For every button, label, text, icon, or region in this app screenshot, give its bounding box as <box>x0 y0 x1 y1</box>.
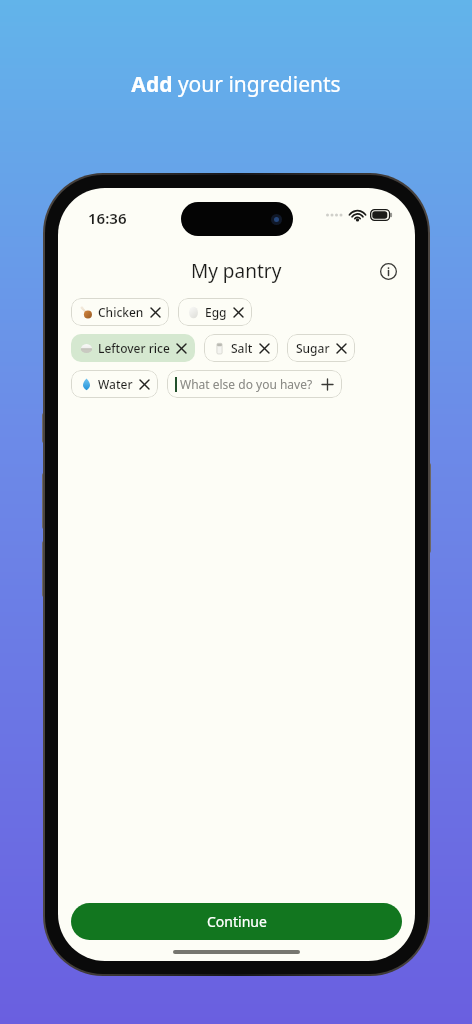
button[interactable]: Egg <box>178 298 252 326</box>
button[interactable]: Leftover rice <box>71 334 195 362</box>
staticText: Sugar <box>296 340 330 356</box>
staticText: My pantry <box>191 258 282 284</box>
staticText: Egg <box>205 304 227 320</box>
staticText: 16:36 <box>88 208 127 228</box>
button[interactable]: Chicken <box>71 298 169 326</box>
button[interactable]: Salt <box>204 334 278 362</box>
staticText: Salt <box>231 340 253 356</box>
button[interactable]: Water <box>71 370 158 398</box>
button[interactable]: Continue <box>71 903 402 940</box>
staticText: Continue <box>207 912 267 931</box>
button[interactable]: Sugar <box>287 334 355 362</box>
staticText: Add your ingredients <box>131 70 341 99</box>
staticText: Leftover rice <box>98 340 170 356</box>
button[interactable]: What else do you have? <box>167 370 342 398</box>
staticText: What else do you have? <box>180 376 313 392</box>
staticText: Chicken <box>98 304 144 320</box>
staticText: Water <box>98 376 133 392</box>
button[interactable]: Information <box>373 256 403 286</box>
